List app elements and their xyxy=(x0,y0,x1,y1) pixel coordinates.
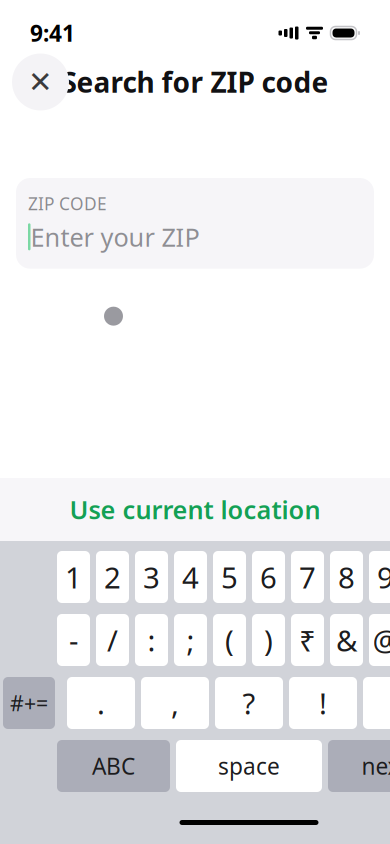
button[interactable]: ABC xyxy=(57,740,170,792)
button[interactable]: 8 xyxy=(330,551,363,603)
staticText: / xyxy=(107,620,118,659)
staticText: ₹ xyxy=(299,620,316,659)
button[interactable]: ? xyxy=(215,677,283,729)
staticText: ? xyxy=(242,683,255,722)
button[interactable]: 3 xyxy=(135,551,168,603)
staticText: 8 xyxy=(338,557,355,596)
staticText: , xyxy=(171,683,179,722)
staticText: Enter your ZIP xyxy=(30,220,199,254)
staticText: 1 xyxy=(65,557,82,596)
staticText: ! xyxy=(319,683,327,722)
staticText: 9 xyxy=(377,557,390,596)
staticText: 3 xyxy=(143,557,160,596)
staticText: ABC xyxy=(92,751,135,781)
staticText: Search for ZIP code xyxy=(61,63,328,101)
button[interactable]: : xyxy=(135,614,168,666)
staticText: . xyxy=(97,683,105,722)
button[interactable]: Use current location xyxy=(0,478,390,541)
button[interactable]: ' xyxy=(363,677,390,729)
button[interactable]: ZIP CODE xyxy=(16,178,374,269)
button[interactable]: @ xyxy=(369,614,390,666)
staticText: @ xyxy=(372,620,390,659)
staticText: 5 xyxy=(221,557,238,596)
button[interactable]: 6 xyxy=(252,551,285,603)
staticText: : xyxy=(147,620,155,659)
button[interactable]: Close xyxy=(12,53,69,110)
staticText: ✕ xyxy=(28,65,53,99)
button[interactable]: space xyxy=(176,740,322,792)
button[interactable]: / xyxy=(96,614,129,666)
staticText: 9:41 xyxy=(30,18,75,48)
button[interactable]: ( xyxy=(213,614,246,666)
staticText: next xyxy=(361,751,390,781)
staticText: #+= xyxy=(10,689,48,717)
button[interactable]: . xyxy=(67,677,135,729)
button[interactable]: 7 xyxy=(291,551,324,603)
button[interactable]: ₹ xyxy=(291,614,324,666)
button[interactable]: 2 xyxy=(96,551,129,603)
button[interactable]: 5 xyxy=(213,551,246,603)
staticText: space xyxy=(218,751,280,781)
staticText: 4 xyxy=(182,557,199,596)
staticText: ; xyxy=(186,620,194,659)
button[interactable]: ) xyxy=(252,614,285,666)
button[interactable]: 9 xyxy=(369,551,390,603)
button[interactable]: next xyxy=(328,740,390,792)
staticText: ZIP CODE xyxy=(28,192,107,215)
staticText: ( xyxy=(225,620,234,659)
staticText: 2 xyxy=(104,557,121,596)
staticText: Use current location xyxy=(69,493,320,526)
button[interactable]: - xyxy=(57,614,90,666)
staticText: ) xyxy=(264,620,273,659)
staticText: - xyxy=(69,620,78,659)
button[interactable]: 4 xyxy=(174,551,207,603)
staticText: 7 xyxy=(299,557,316,596)
button[interactable]: #+= xyxy=(3,677,55,729)
staticText: & xyxy=(336,620,357,659)
button[interactable]: ! xyxy=(289,677,357,729)
button[interactable]: & xyxy=(330,614,363,666)
button[interactable]: 1 xyxy=(57,551,90,603)
button[interactable]: , xyxy=(141,677,209,729)
button[interactable]: ; xyxy=(174,614,207,666)
staticText: 6 xyxy=(260,557,277,596)
